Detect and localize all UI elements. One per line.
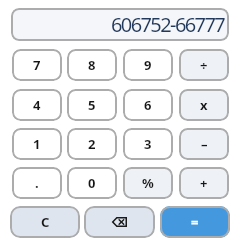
button[interactable]: 3 — [123, 128, 173, 160]
button[interactable]: 4 — [12, 89, 62, 121]
button[interactable]: 6 — [123, 89, 173, 121]
staticText: C — [41, 213, 50, 231]
button[interactable]: 8 — [67, 49, 117, 81]
staticText: 7 — [33, 56, 41, 74]
staticText: 1 — [33, 135, 41, 153]
button[interactable]: 2 — [67, 128, 117, 160]
staticText: ÷ — [200, 56, 208, 74]
button[interactable]: – — [179, 128, 229, 160]
button[interactable] — [84, 206, 155, 238]
staticText: 6 — [144, 96, 152, 114]
staticText: 5 — [88, 96, 96, 114]
staticText: 4 — [33, 96, 41, 114]
button[interactable]: = — [160, 206, 230, 238]
staticText: 8 — [88, 56, 96, 74]
button[interactable]: . — [12, 167, 62, 199]
staticText: . — [35, 174, 39, 192]
staticText: 606752-66777 — [111, 11, 225, 38]
staticText: x — [200, 96, 208, 114]
staticText: 2 — [88, 135, 96, 153]
staticText: + — [200, 174, 208, 192]
button[interactable]: 5 — [67, 89, 117, 121]
button[interactable]: 1 — [12, 128, 62, 160]
staticText: % — [142, 174, 154, 192]
button[interactable]: 9 — [123, 49, 173, 81]
staticText: 3 — [144, 135, 152, 153]
staticText: – — [201, 135, 208, 153]
button[interactable]: ÷ — [179, 49, 229, 81]
button[interactable]: % — [123, 167, 173, 199]
button[interactable]: + — [179, 167, 229, 199]
button[interactable]: 0 — [67, 167, 117, 199]
button[interactable]: C — [10, 206, 80, 238]
staticText: 9 — [144, 56, 152, 74]
button[interactable]: 606752-66777 — [11, 8, 229, 41]
button[interactable]: 7 — [12, 49, 62, 81]
staticText: 0 — [88, 174, 96, 192]
staticText: = — [191, 213, 199, 231]
button[interactable]: x — [179, 89, 229, 121]
